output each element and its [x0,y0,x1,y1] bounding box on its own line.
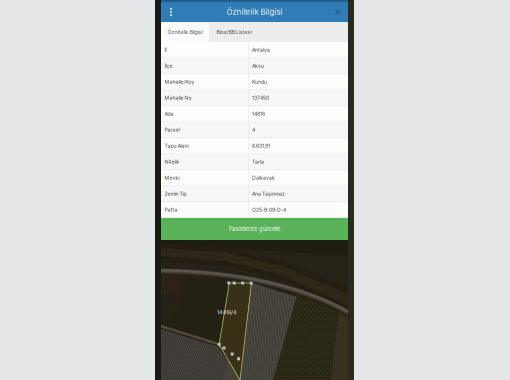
staticText: 14816 [252,111,265,117]
staticText: İlçe [164,63,172,69]
staticText: İl [164,47,166,53]
staticText: Ada [164,111,173,117]
staticText: Parsel [164,127,179,133]
staticText: Ana Taşınmaz [252,191,285,197]
staticText: Favorilerde güncelle [229,225,280,232]
staticText: Mahalle/Köy [164,79,194,85]
staticText: Mevki [164,175,179,181]
button[interactable]: Close [328,2,348,22]
staticText: Bina/BB Listesi [216,29,251,35]
staticText: Tapu Alanı [164,143,188,149]
staticText: 137450 [252,95,269,101]
staticText: Kundu [252,79,267,85]
staticText: Zemin Tip [164,191,186,197]
staticText: Öznitelik Bilgisi [226,7,282,17]
staticText: Öznitelik Bilgisi [167,29,202,35]
staticText: Antalya [252,47,270,53]
button[interactable]: Bina/BB Listesi [209,22,259,42]
staticText: 6.631,91 [252,143,270,149]
staticText: Mahalle No [164,95,191,101]
staticText: Aksu [252,63,264,69]
staticText: Tarla [252,159,264,165]
staticText: Dalkavak [252,175,275,181]
button[interactable]: Menu [161,2,181,22]
staticText: O25-B-09-D-4 [252,207,286,213]
staticText: Nitelik [164,159,179,165]
staticText: Pafta [164,207,177,213]
staticText: 4 [252,127,255,133]
staticText: 14816/4 [217,309,237,315]
button[interactable]: Öznitelik Bilgisi [161,22,209,42]
button[interactable]: Favorilerde güncelle [161,218,348,240]
